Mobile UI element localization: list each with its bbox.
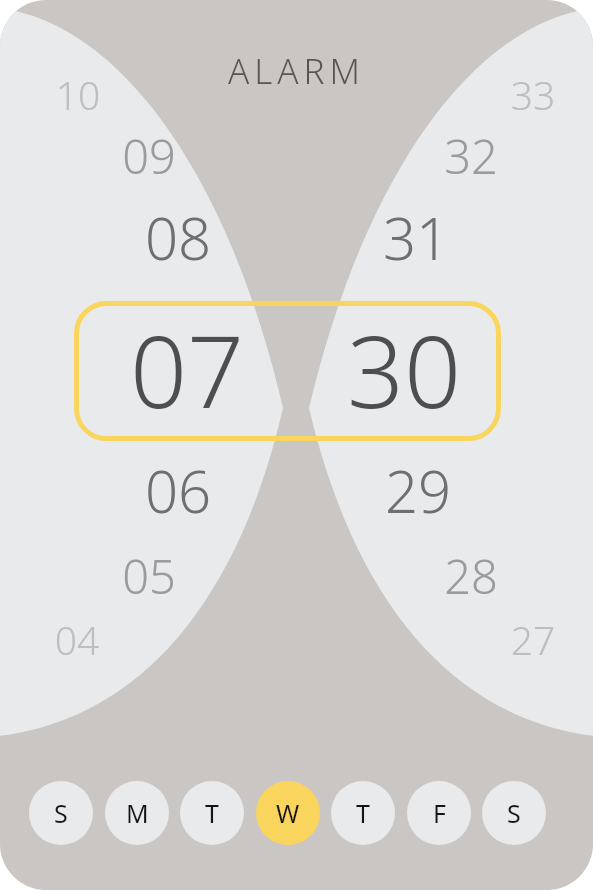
staticText: 08 (48, 198, 308, 277)
staticText: 10 (0, 68, 208, 121)
staticText: 09 (19, 124, 279, 188)
staticText: 07 (57, 301, 317, 437)
button[interactable]: S (29, 781, 93, 845)
staticText: 29 (288, 451, 548, 530)
button[interactable]: W (256, 781, 320, 845)
staticText: 06 (48, 451, 308, 530)
staticText: 04 (0, 613, 207, 666)
staticText: 28 (341, 544, 593, 608)
button[interactable]: Selected time 07 30 (74, 301, 501, 441)
button[interactable]: M (105, 781, 169, 845)
staticText: S (507, 796, 521, 830)
staticText: 27 (403, 613, 593, 666)
staticText: 30 (274, 301, 534, 437)
staticText: ALARM (228, 47, 366, 95)
button[interactable]: T (180, 781, 244, 845)
staticText: 31 (286, 198, 546, 277)
staticText: M (126, 796, 149, 830)
button[interactable]: S (482, 781, 546, 845)
staticText: 05 (19, 544, 279, 608)
staticText: S (54, 796, 68, 830)
staticText: W (276, 796, 300, 830)
staticText: 33 (403, 68, 593, 121)
staticText: T (205, 796, 219, 830)
button[interactable]: T (331, 781, 395, 845)
staticText: T (356, 796, 370, 830)
staticText: 32 (341, 124, 593, 188)
staticText: F (433, 796, 446, 830)
button[interactable]: F (407, 781, 471, 845)
